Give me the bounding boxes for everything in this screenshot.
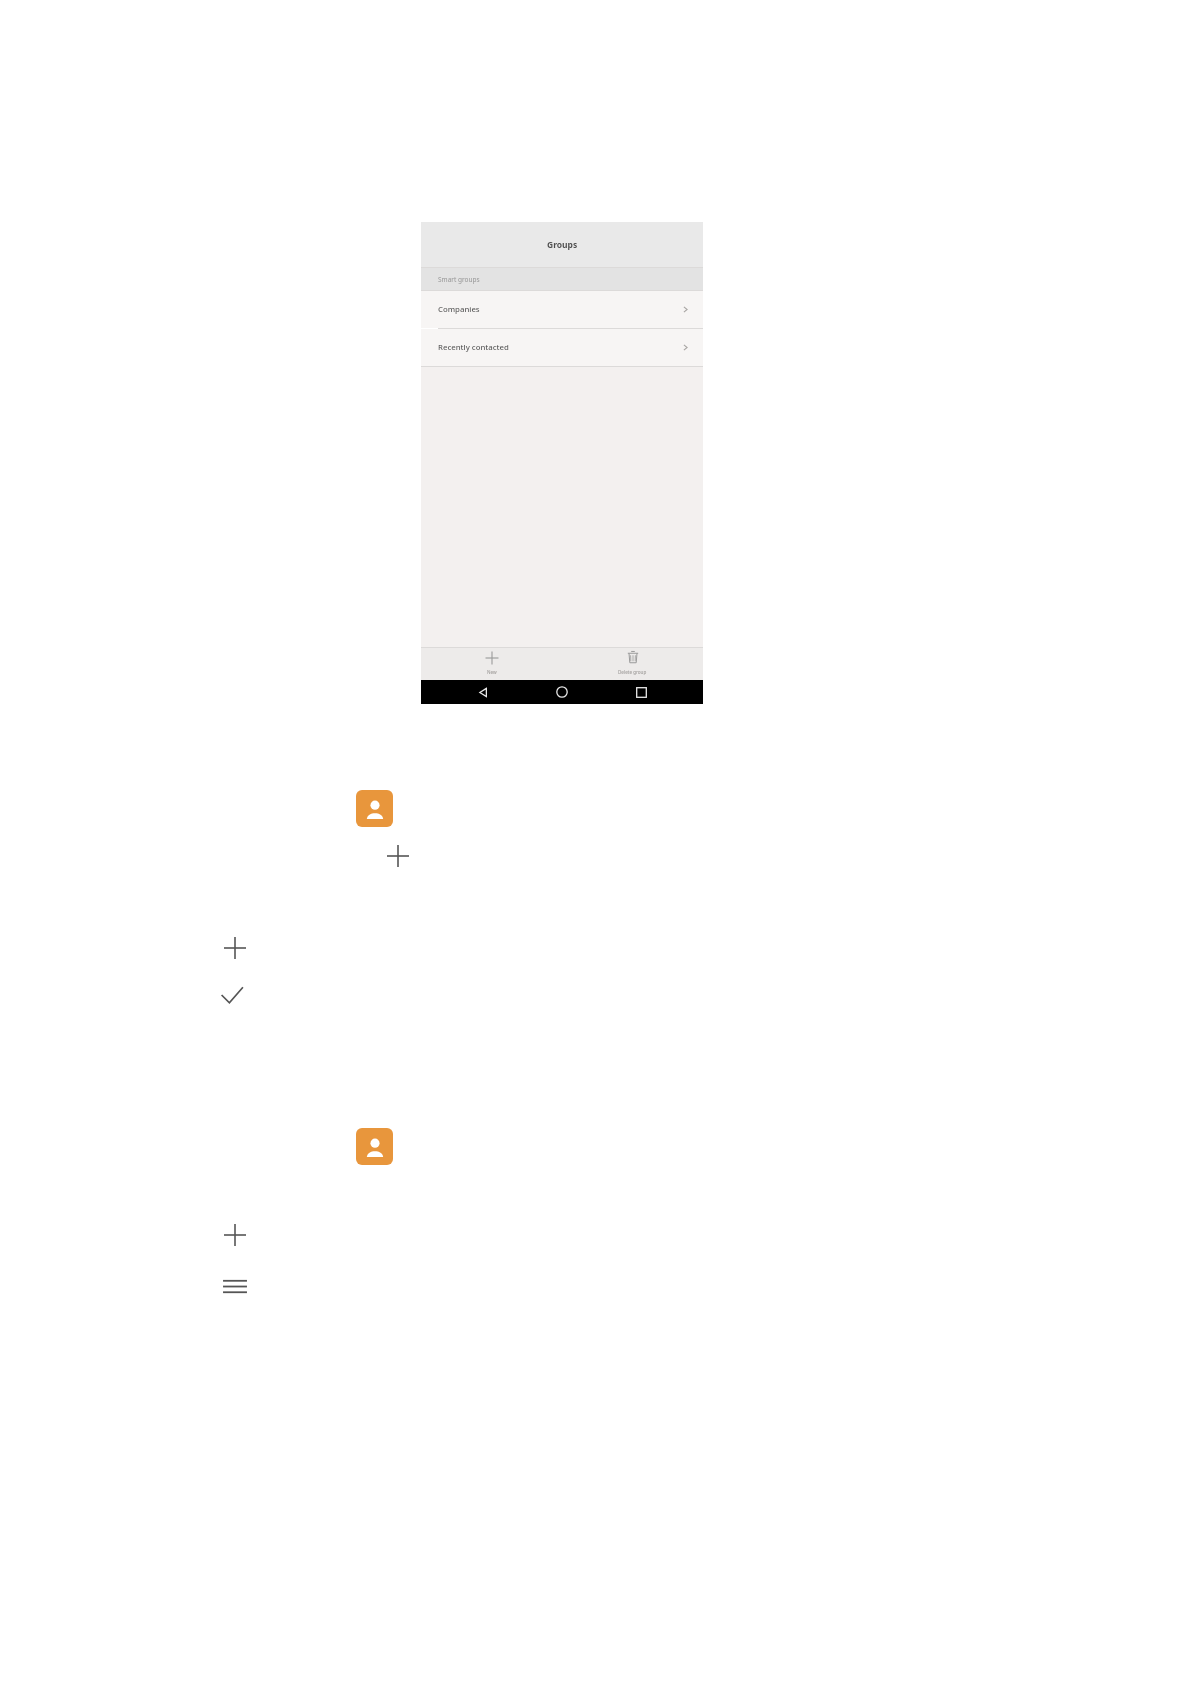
staticText: Groups (547, 239, 578, 251)
staticText: New (487, 669, 497, 675)
staticText: Recently contacted (438, 342, 509, 353)
button[interactable]: Recent apps (624, 680, 658, 704)
button[interactable]: Home (545, 680, 579, 704)
staticText: Companies (438, 304, 480, 315)
button[interactable]: Companies (421, 291, 703, 328)
button[interactable]: Back (466, 680, 500, 704)
button[interactable]: Contacts (356, 1128, 393, 1165)
button[interactable]: Delete group (562, 648, 703, 675)
button[interactable]: Add (218, 1218, 252, 1252)
button[interactable]: New (421, 648, 562, 675)
button[interactable]: Add (381, 839, 415, 873)
staticText: Delete group (618, 669, 647, 675)
button[interactable]: Recently contacted (421, 329, 703, 366)
button[interactable]: Add (218, 931, 252, 965)
button[interactable]: Confirm (215, 978, 249, 1012)
button[interactable]: Menu (218, 1269, 252, 1303)
staticText: Smart groups (438, 275, 480, 284)
button[interactable]: Contacts (356, 790, 393, 827)
